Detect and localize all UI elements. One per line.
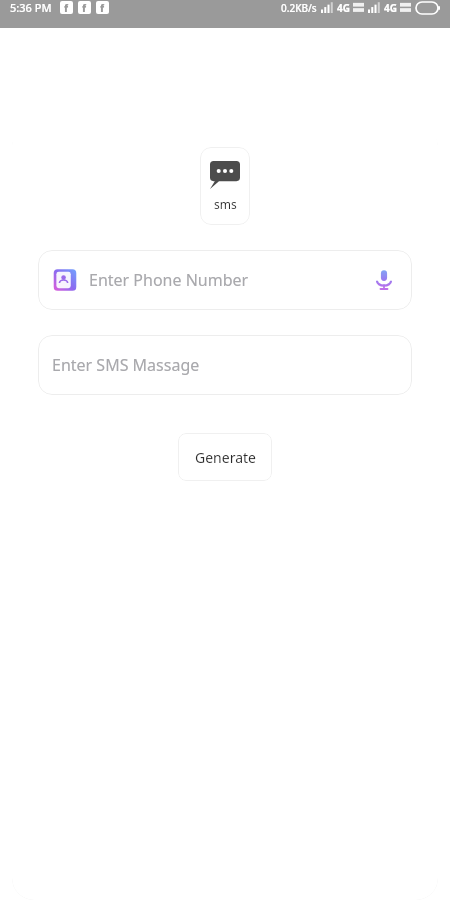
staticText: f <box>82 1 87 14</box>
button[interactable]: Pick contact <box>38 250 412 310</box>
button[interactable]: sms <box>200 147 250 225</box>
staticText: Enter Phone Number <box>89 269 249 291</box>
button[interactable]: Voice input <box>370 266 398 294</box>
staticText: f <box>64 1 69 14</box>
staticText: 4G <box>384 1 397 15</box>
staticText: sms <box>214 196 237 212</box>
staticText: 0.2KB/s <box>281 1 317 15</box>
staticText: Generate <box>195 448 256 467</box>
staticText: 5:36 PM <box>10 0 52 15</box>
button[interactable]: Enter SMS Massage <box>38 335 412 395</box>
staticText: Enter SMS Massage <box>52 354 200 376</box>
staticText: f <box>100 1 105 14</box>
staticText: 4G <box>337 1 350 15</box>
button[interactable]: Pick contact <box>52 267 78 293</box>
button[interactable]: Generate <box>178 433 272 481</box>
